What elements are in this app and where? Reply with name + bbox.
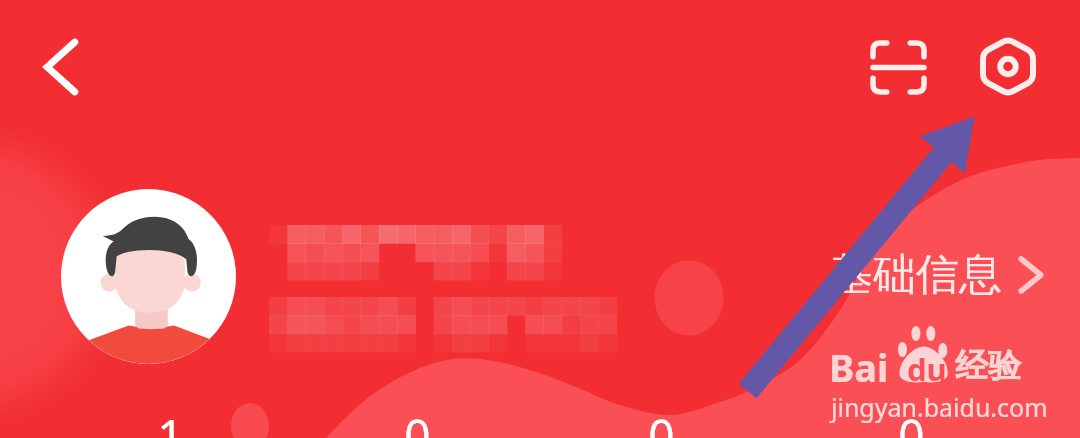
staticText: 1 — [157, 404, 184, 438]
button[interactable]: Scan code — [855, 24, 941, 110]
button[interactable]: 0 — [357, 404, 477, 438]
staticText: 0 — [648, 404, 675, 438]
staticText: 0 — [898, 404, 925, 438]
staticText: 0 — [404, 404, 431, 438]
button[interactable]: 基础信息 — [830, 248, 1044, 302]
button[interactable]: 1 — [110, 404, 230, 438]
staticText: 经验 — [955, 345, 1021, 387]
button[interactable]: 0 — [601, 404, 721, 438]
staticText: du — [907, 348, 947, 390]
staticText: jingyan.baidu.com — [831, 390, 1048, 424]
staticText: 基础信息 — [830, 248, 1002, 302]
button[interactable]: Settings — [965, 23, 1051, 109]
button[interactable]: Back — [16, 26, 106, 108]
button[interactable]: Profile photo — [61, 189, 236, 364]
button[interactable]: 0 — [851, 404, 971, 438]
staticText: Bai — [829, 341, 889, 393]
